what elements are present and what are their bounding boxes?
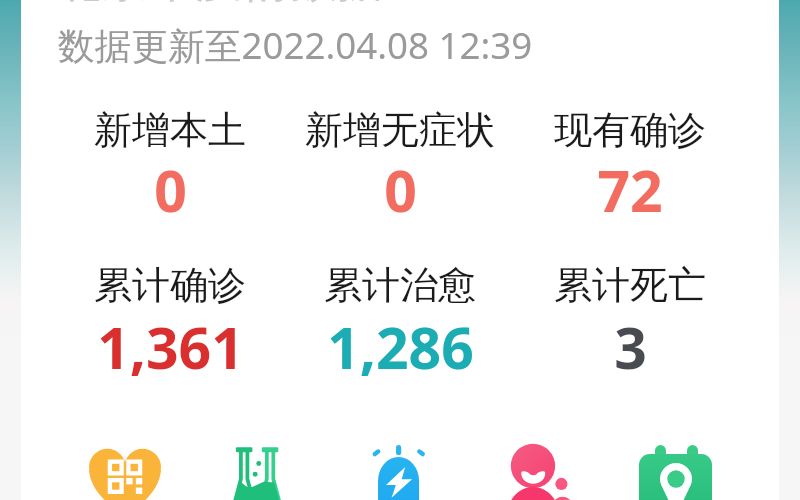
button[interactable]: 行程卡 [640,443,712,500]
staticText: 新增无症状 [305,106,495,154]
staticText: 1,361 [97,308,244,386]
staticText: 新增本土 [94,106,246,154]
button[interactable]: 累计确诊 [55,261,285,387]
staticText: 0 [154,151,187,229]
staticText: 0 [384,151,417,229]
button[interactable]: 个人中心 [501,443,573,500]
button[interactable]: 新增无症状 [285,106,515,232]
button[interactable]: 北京市疫情数据 [55,0,384,4]
staticText: 72 [597,151,663,229]
staticText: 3 [614,308,647,386]
staticText: 数据更新至2022.04.08 12:39 [58,20,533,70]
button[interactable]: 疫苗接种 [366,443,438,500]
staticText: 累计治愈 [324,261,476,309]
button[interactable]: 新增本土 [55,106,285,232]
staticText: 累计确诊 [94,261,246,309]
staticText: 累计死亡 [554,261,706,309]
button[interactable]: 健康码 [89,443,161,500]
button[interactable]: 累计死亡 [515,261,745,387]
button[interactable]: 数据更新至2022.04.08 12:39 [58,20,533,70]
staticText: 现有确诊 [554,106,706,154]
button[interactable]: 累计治愈 [285,261,515,387]
button[interactable]: 核酸检测 [226,443,298,500]
staticText: 北京市疫情数据 [55,0,384,4]
staticText: 1,286 [327,308,474,386]
button[interactable]: 现有确诊 [515,106,745,232]
